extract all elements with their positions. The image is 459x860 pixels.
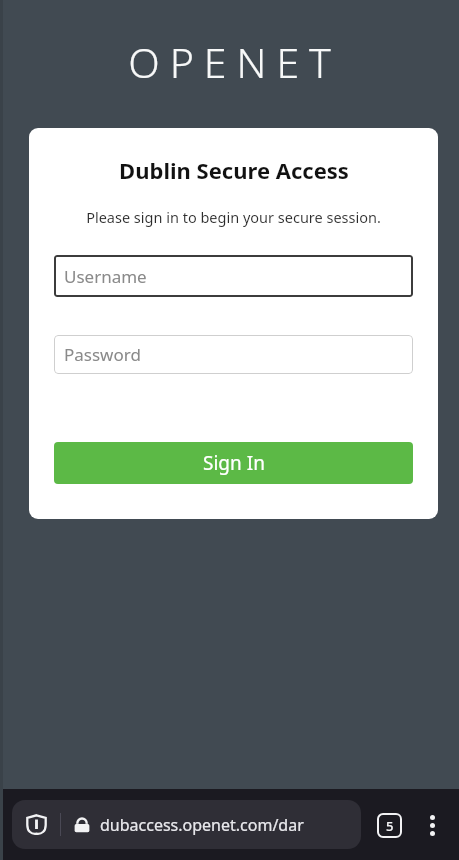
- button[interactable]: Shields: [12, 800, 361, 849]
- staticText: Username: [64, 265, 147, 288]
- staticText: Please sign in to begin your secure sess…: [86, 207, 381, 227]
- button[interactable]: Password: [54, 335, 413, 374]
- staticText: Sign In: [203, 450, 265, 476]
- staticText: Dublin Secure Access: [119, 155, 349, 185]
- button[interactable]: Tabs, 5 open: [373, 809, 405, 841]
- button[interactable]: More options: [415, 808, 449, 842]
- staticText: OPENET: [128, 34, 341, 90]
- button[interactable]: Sign In: [54, 442, 413, 484]
- staticText: dubaccess.openet.com/dar: [100, 814, 304, 836]
- button[interactable]: Username: [54, 255, 413, 297]
- staticText: 5: [386, 817, 394, 835]
- other: Shields: [25, 813, 48, 836]
- staticText: Password: [64, 343, 141, 366]
